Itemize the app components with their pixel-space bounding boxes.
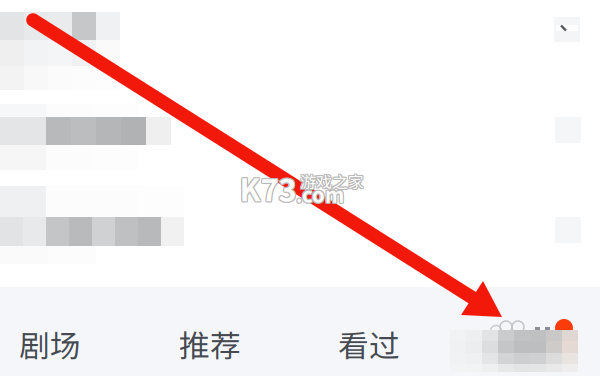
staticText: .com — [296, 178, 344, 207]
staticText: .com — [296, 180, 344, 209]
staticText: K73 — [240, 166, 297, 210]
button[interactable]: 剧场 — [0, 299, 125, 376]
staticText: K73 — [240, 167, 297, 211]
staticText: 游戏之家 — [300, 168, 364, 192]
button[interactable]: 我的 — [453, 287, 600, 376]
staticText: 游戏之家 — [300, 170, 364, 194]
staticText: .com — [295, 179, 343, 208]
button[interactable]: 推荐 — [135, 299, 285, 376]
staticText: 看过 — [338, 322, 400, 366]
staticText: 游戏之家 — [301, 168, 365, 192]
staticText: 游戏之家 — [299, 168, 363, 192]
staticText: K73 — [238, 165, 295, 209]
staticText: K73 — [238, 167, 295, 211]
staticText: K73 — [239, 165, 296, 209]
staticText: 剧场 — [19, 322, 81, 366]
staticText: .com — [295, 178, 343, 207]
staticText: .com — [296, 179, 344, 208]
staticText: .com — [297, 179, 345, 208]
staticText: 游戏之家 — [299, 169, 363, 193]
staticText: 游戏之家 — [301, 169, 365, 193]
staticText: K73 — [238, 166, 295, 210]
staticText: .com — [297, 180, 345, 209]
staticText: K73 — [239, 167, 296, 211]
staticText: K73 — [239, 166, 296, 210]
staticText: 游戏之家 — [301, 170, 365, 194]
staticText: K73 — [240, 165, 297, 209]
staticText: .com — [295, 180, 343, 209]
staticText: .com — [297, 178, 345, 207]
button[interactable]: 看过 — [294, 299, 444, 376]
staticText: 游戏之家 — [300, 169, 364, 193]
staticText: 游戏之家 — [299, 170, 363, 194]
staticText: 推荐 — [179, 322, 241, 366]
